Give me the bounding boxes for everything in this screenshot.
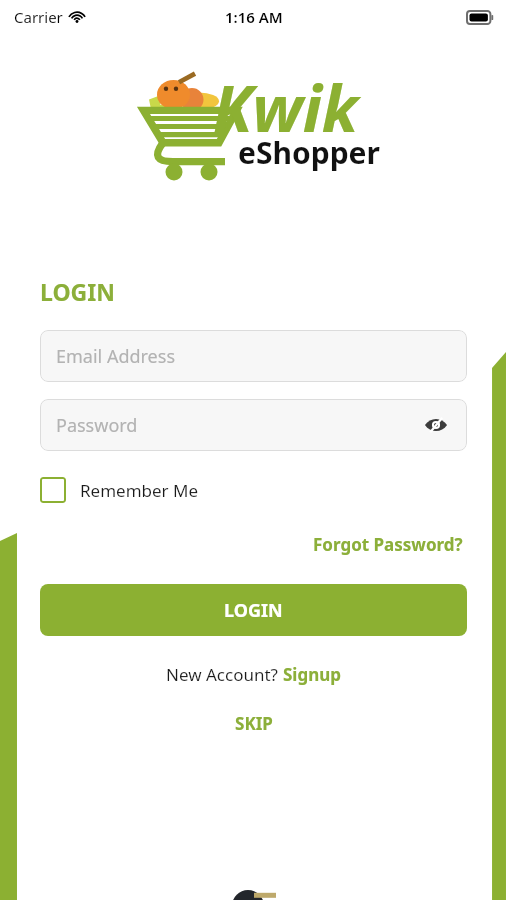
button[interactable]: Email Address — [40, 330, 467, 382]
button[interactable]: Remember Me — [40, 473, 199, 507]
staticText: New Account? — [166, 663, 283, 686]
staticText: Kwik — [213, 64, 359, 151]
staticText: 1:16 AM — [225, 7, 283, 27]
button[interactable]: Password — [40, 399, 467, 451]
staticText: LOGIN — [40, 276, 115, 307]
button[interactable]: New Account? — [40, 663, 467, 686]
staticText: Email Address — [56, 344, 176, 369]
staticText: LOGIN — [224, 598, 283, 623]
staticText: Remember Me — [80, 479, 199, 502]
staticText: Carrier — [14, 7, 63, 27]
staticText: eShopper — [238, 132, 380, 173]
button[interactable]: Forgot Password? — [309, 529, 467, 560]
button[interactable]: Show password — [421, 410, 451, 440]
button[interactable]: LOGIN — [40, 584, 467, 636]
staticText: Password — [56, 413, 138, 438]
staticText: Signup — [283, 663, 342, 686]
button[interactable]: SKIP — [219, 708, 289, 739]
